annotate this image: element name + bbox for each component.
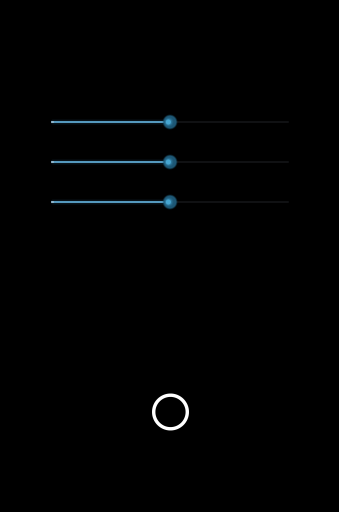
button[interactable]: Record <box>152 393 189 430</box>
button[interactable]: Channel 2 level <box>0 161 339 163</box>
button[interactable]: Channel 3 level <box>0 201 339 203</box>
button[interactable]: Channel 1 level <box>0 121 339 123</box>
